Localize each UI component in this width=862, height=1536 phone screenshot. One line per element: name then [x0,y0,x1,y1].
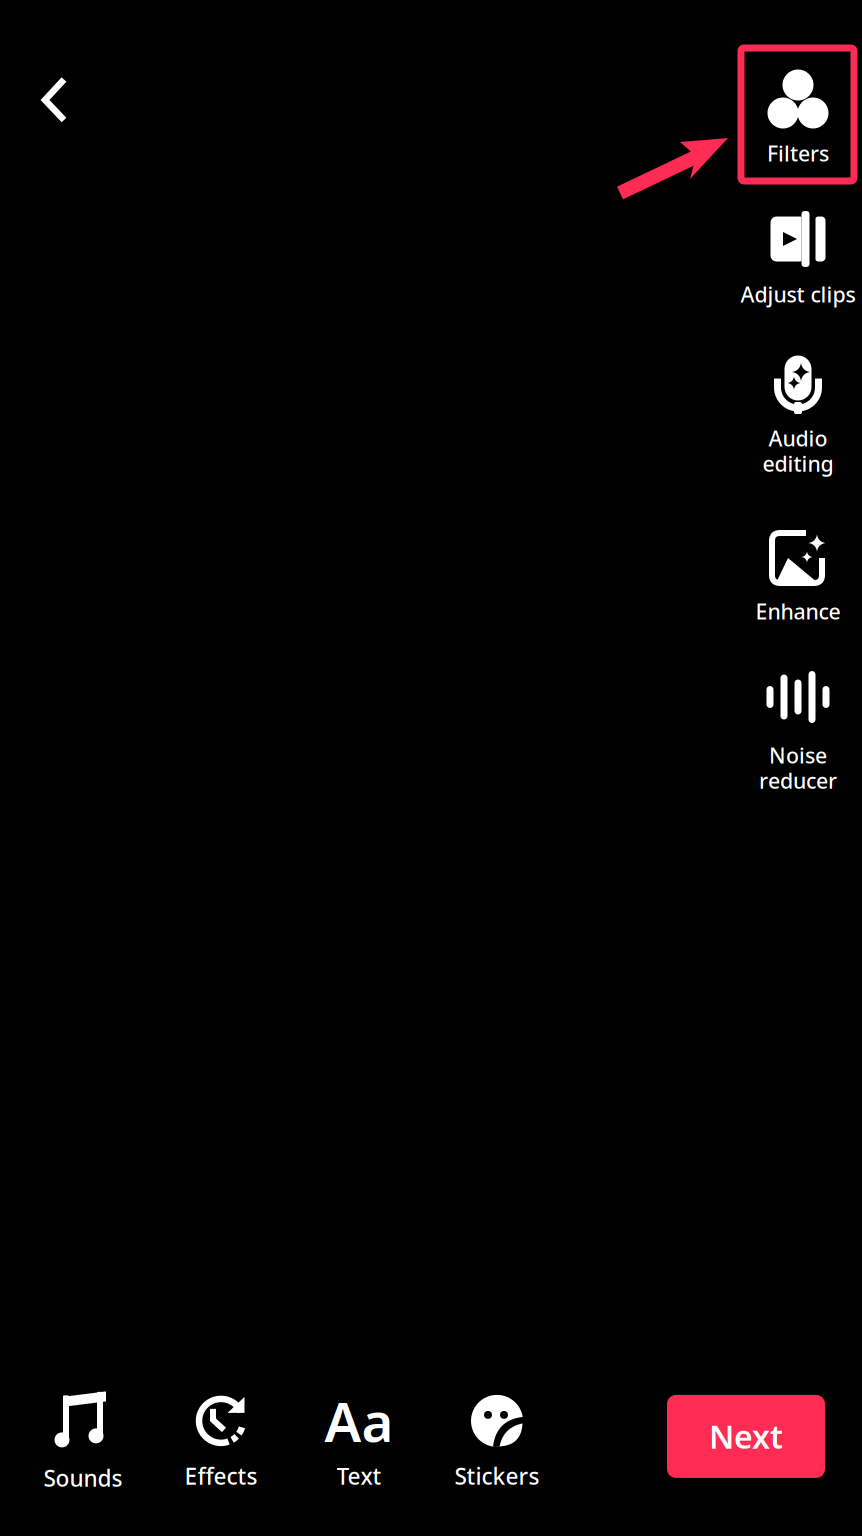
button[interactable]: Enhance [739,518,857,668]
button[interactable]: Filters [739,60,857,210]
staticText: Effects [184,1461,257,1491]
staticText: reducer [759,766,837,795]
staticText: Noise [769,741,827,769]
staticText: Enhance [755,597,840,625]
button[interactable]: Noise [739,662,857,812]
button[interactable]: Effects [152,1394,290,1491]
button[interactable]: Back [19,54,90,146]
button[interactable]: Audio [739,345,857,495]
staticText: Filters [767,139,829,167]
staticText: Stickers [454,1461,539,1491]
staticText: Sounds [43,1463,122,1493]
staticText: Text [336,1461,381,1491]
staticText: editing [762,449,833,478]
button[interactable]: Next [667,1401,825,1484]
button[interactable]: Aa [290,1394,428,1491]
button[interactable]: Stickers [428,1394,566,1491]
staticText: Adjust clips [740,280,855,308]
staticText: Aa [324,1385,393,1457]
button[interactable]: Sounds [14,1392,152,1493]
staticText: Audio [768,424,827,452]
staticText: Next [709,1415,783,1458]
button[interactable]: Adjust clips [739,201,857,351]
